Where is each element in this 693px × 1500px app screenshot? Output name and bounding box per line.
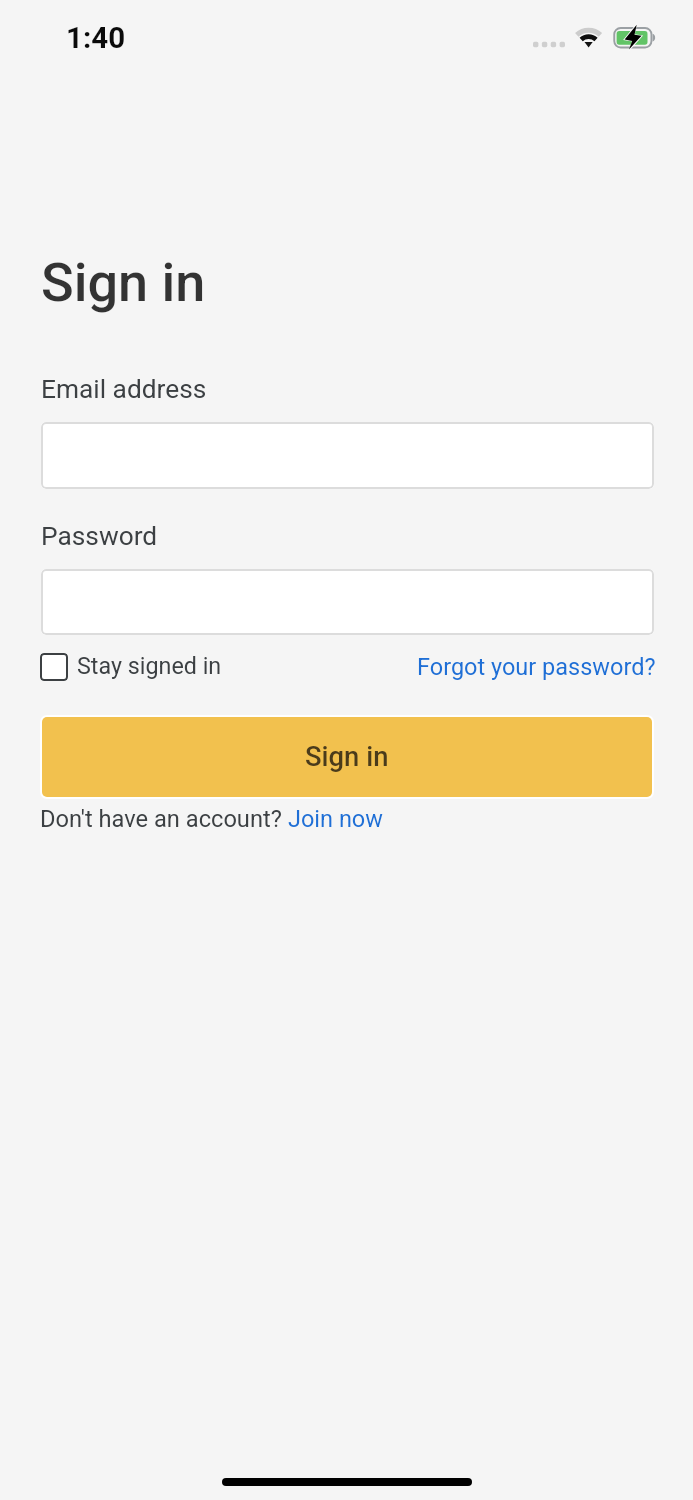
staticText: Email address bbox=[41, 374, 207, 405]
staticText: Forgot your password? bbox=[417, 653, 656, 681]
button[interactable]: Sign in bbox=[42, 717, 652, 797]
staticText: Stay signed in bbox=[77, 652, 222, 679]
button[interactable]: Join now bbox=[282, 799, 389, 839]
button[interactable]: Stay signed in bbox=[40, 650, 222, 682]
button[interactable]: Password input bbox=[41, 569, 654, 635]
staticText: Don't have an account? bbox=[40, 805, 288, 833]
staticText: 1:40 bbox=[66, 21, 126, 56]
staticText: Sign in bbox=[305, 741, 389, 773]
staticText: Password bbox=[41, 521, 158, 552]
button[interactable]: Email address input bbox=[41, 422, 654, 489]
staticText: Sign in bbox=[41, 251, 206, 314]
staticText: Join now bbox=[288, 805, 383, 833]
button[interactable]: Forgot your password? bbox=[409, 645, 664, 689]
